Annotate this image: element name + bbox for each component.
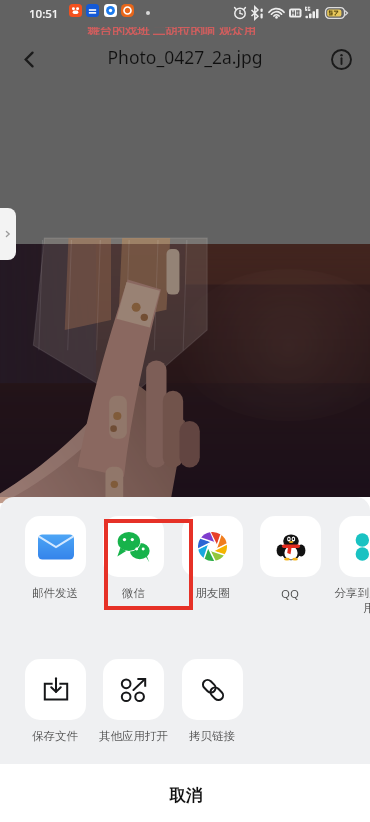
staticText: 朋友圈 [195,586,230,600]
staticText: 微信 [122,586,145,600]
button[interactable]: 微信 [94,516,172,600]
staticText: 保存文件 [32,729,78,743]
staticText: 邮件发送 [32,586,78,600]
button[interactable]: QQ [251,516,329,602]
button[interactable]: 朋友圈 [173,516,251,600]
button[interactable]: 其他应用打开 [94,659,172,743]
button[interactable]: 分享到朋友圈用 [330,516,370,616]
button[interactable]: Back [8,38,50,80]
button[interactable]: 邮件发送 [16,516,94,600]
staticText: 分享到朋友圈用 [330,586,370,616]
button[interactable]: Open panel [0,208,16,260]
staticText: 拷贝链接 [189,729,235,743]
button[interactable]: 保存文件 [16,659,94,743]
staticText: 其他应用打开 [99,729,168,743]
staticText: Photo_0427_2a.jpg [0,45,370,69]
button[interactable]: 拷贝链接 [173,659,251,743]
staticText: 10:51 [29,6,59,22]
button[interactable]: Info [320,38,362,80]
staticText: QQ [281,586,299,602]
button[interactable]: 取消 [0,764,370,822]
staticText: 舞台的戏班 二胡拉的响 观众用 [87,27,257,35]
staticText: 取消 [169,785,202,806]
